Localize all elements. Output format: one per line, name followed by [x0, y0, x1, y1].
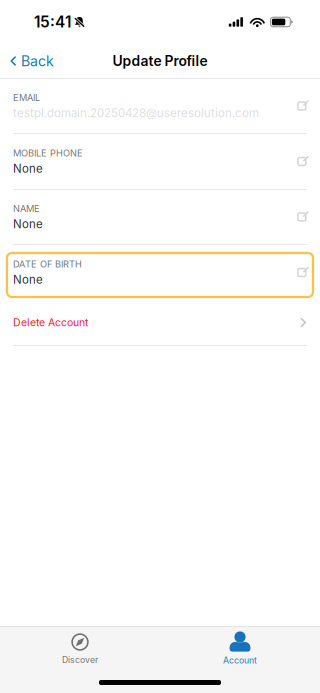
staticText: testpl.domain.20250428@useresolution.com: [13, 106, 259, 120]
staticText: None: [13, 162, 43, 175]
staticText: EMAIL: [13, 92, 40, 103]
staticText: DATE OF BIRTH: [13, 258, 82, 270]
staticText: MOBILE PHONE: [13, 147, 83, 159]
staticText: None: [13, 273, 43, 286]
button[interactable]: Account: [160, 627, 320, 665]
staticText: NAME: [13, 203, 40, 214]
staticText: Back: [21, 52, 54, 69]
button[interactable]: EMAIL: [0, 79, 320, 133]
staticText: Discover: [62, 655, 98, 665]
staticText: 15:41: [34, 13, 71, 31]
button[interactable]: NAME: [0, 190, 320, 244]
button[interactable]: Discover: [0, 627, 160, 665]
button[interactable]: Delete Account: [0, 300, 320, 345]
staticText: Update Profile: [112, 53, 207, 69]
button[interactable]: DATE OF BIRTH: [0, 245, 320, 300]
button[interactable]: MOBILE PHONE: [0, 134, 320, 189]
staticText: None: [13, 217, 43, 231]
staticText: Delete Account: [13, 316, 88, 329]
staticText: Account: [223, 655, 257, 665]
button[interactable]: Back: [0, 44, 64, 77]
